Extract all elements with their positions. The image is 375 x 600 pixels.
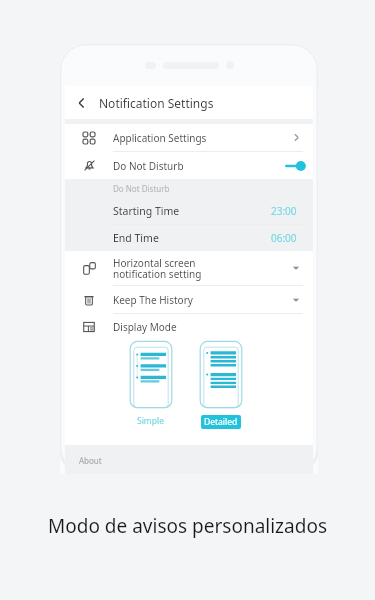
staticText: Simple [137,415,165,427]
button[interactable]: About [65,449,313,471]
staticText: Starting Time [113,204,180,218]
staticText: About [79,455,102,466]
staticText: Keep The History [113,293,193,307]
staticText: Notification Settings [99,95,214,111]
button[interactable]: End Time [65,225,313,251]
button[interactable]: Application Settings [65,124,313,151]
button[interactable]: Horizontal screen notification setting [65,251,313,285]
staticText: Do Not Disturb [113,183,170,194]
staticText: 06:00 [271,231,297,245]
button[interactable]: Do Not Disturb [65,152,313,179]
staticText: Detailed [204,416,238,428]
button[interactable]: Keep The History [65,286,313,313]
staticText: End Time [113,231,159,245]
staticText: Application Settings [113,131,207,145]
button[interactable] [195,340,247,412]
staticText: 23:00 [271,204,297,218]
button[interactable]: Starting Time [65,198,313,224]
staticText: Modo de avisos personalizados [48,513,327,539]
button[interactable]: Display Mode [65,314,313,340]
staticText: Horizontal screen notification setting [113,256,202,281]
button[interactable]: Back [65,86,99,119]
staticText: Do Not Disturb [113,159,184,173]
staticText: Display Mode [113,320,177,334]
button[interactable] [125,340,177,412]
